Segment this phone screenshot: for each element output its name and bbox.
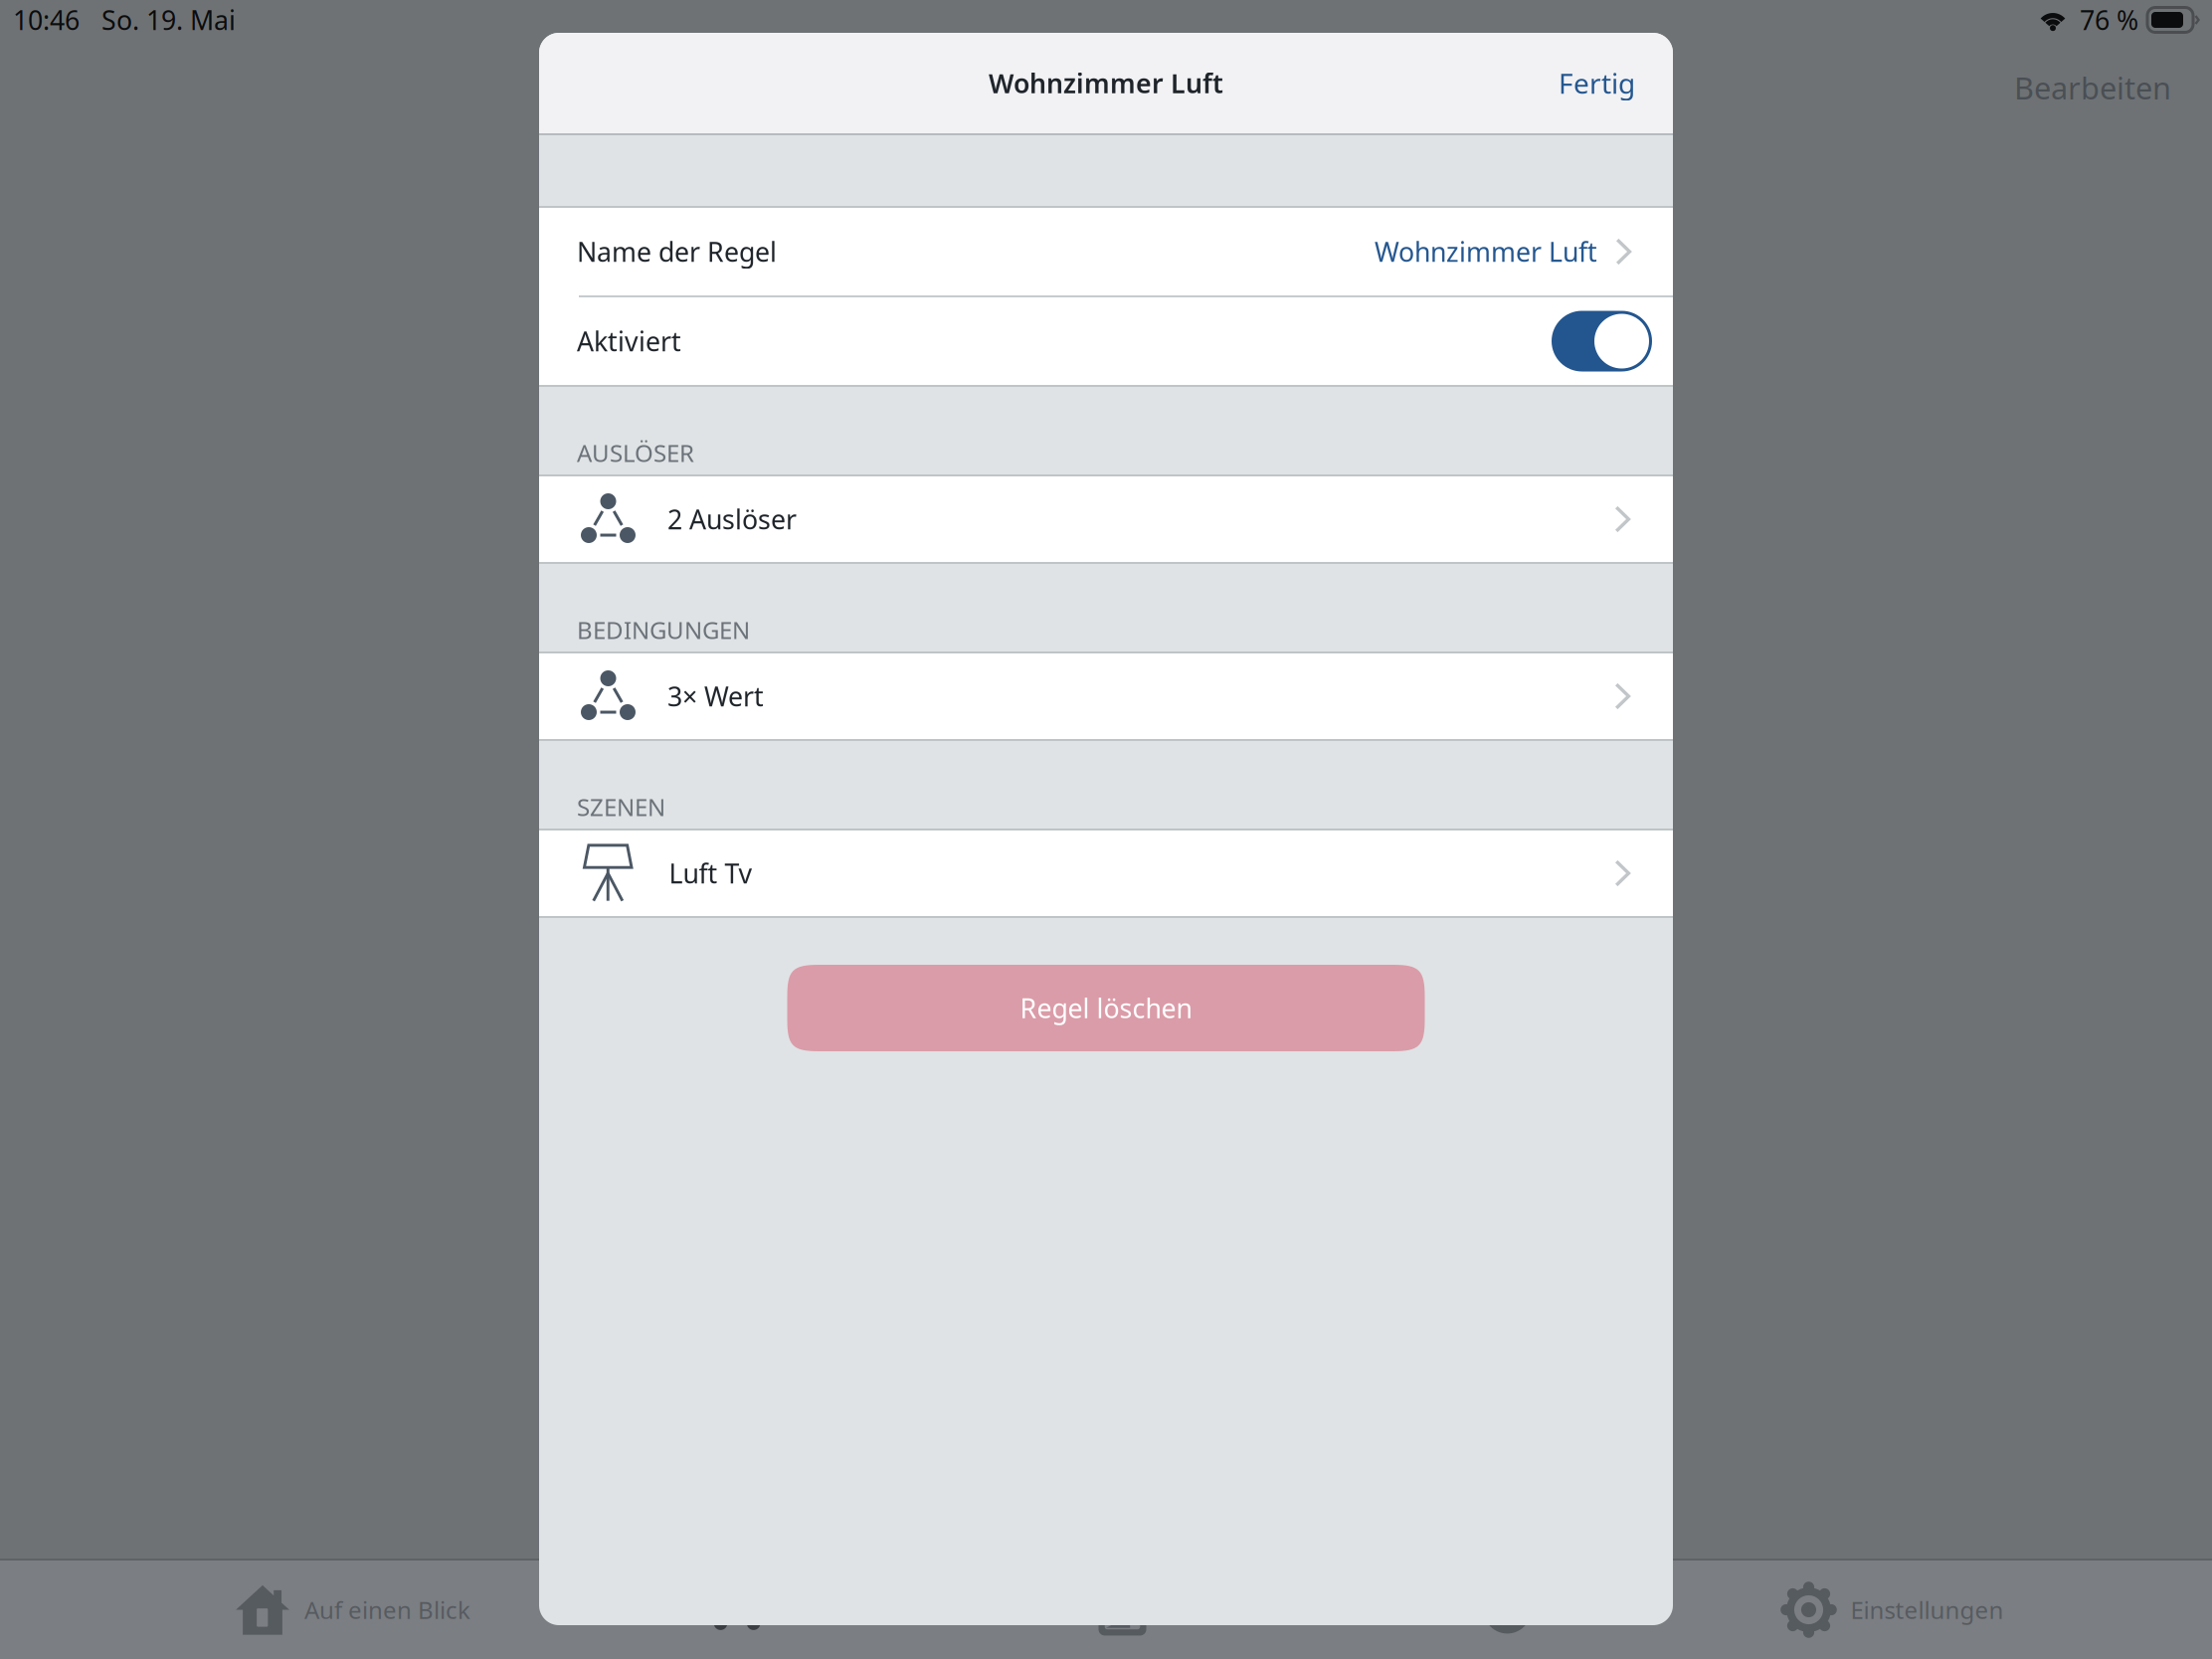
staticText: Name der Regel bbox=[577, 234, 777, 269]
staticText: 10:46 bbox=[13, 2, 80, 37]
staticText: 76 % bbox=[2080, 2, 2138, 37]
button[interactable]: Auf einen Blick bbox=[160, 1561, 545, 1659]
staticText: Fertig bbox=[1559, 65, 1635, 102]
button[interactable]: Regel löschen bbox=[787, 965, 1425, 1051]
staticText: AUSLÖSER bbox=[577, 437, 694, 468]
button[interactable]: 2 Auslöser bbox=[539, 476, 1673, 562]
button[interactable]: Luft Tv bbox=[539, 830, 1673, 916]
button[interactable]: Kameras bbox=[930, 1561, 1315, 1659]
button[interactable]: 3× Wert bbox=[539, 653, 1673, 739]
staticText: Regel löschen bbox=[1020, 990, 1192, 1026]
staticText: 3× Wert bbox=[667, 679, 764, 714]
staticText: Auf einen Blick bbox=[304, 1594, 470, 1626]
staticText: Einstellungen bbox=[1850, 1594, 2004, 1626]
button[interactable]: Automationen bbox=[545, 1561, 930, 1659]
staticText: Luft Tv bbox=[669, 856, 752, 891]
button[interactable]: Name der Regel bbox=[539, 208, 1673, 295]
button[interactable]: Personen bbox=[1315, 1561, 1700, 1659]
staticText: Aktiviert bbox=[577, 324, 681, 359]
button[interactable]: Fertig bbox=[1545, 51, 1649, 115]
staticText: Wohnzimmer Luft bbox=[989, 65, 1223, 101]
button[interactable]: Bearbeiten bbox=[1998, 55, 2187, 120]
staticText: Bearbeiten bbox=[2014, 67, 2171, 108]
staticText: Wohnzimmer Luft bbox=[1375, 234, 1597, 269]
button[interactable]: Aktiviert bbox=[1552, 311, 1652, 371]
staticText: SZENEN bbox=[577, 791, 665, 823]
button[interactable]: Einstellungen bbox=[1700, 1561, 2085, 1659]
staticText: So. 19. Mai bbox=[101, 2, 236, 37]
staticText: BEDINGUNGEN bbox=[577, 614, 750, 645]
staticText: 2 Auslöser bbox=[667, 502, 797, 537]
